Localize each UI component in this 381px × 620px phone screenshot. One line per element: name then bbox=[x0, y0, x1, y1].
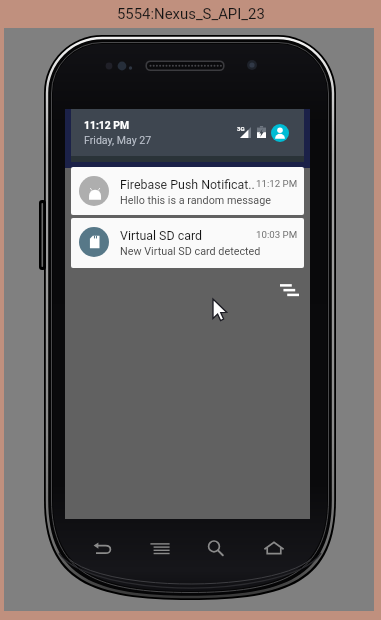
staticText: 11:12 PM bbox=[84, 119, 130, 131]
staticText: Virtual SD card bbox=[120, 228, 265, 243]
button[interactable]: Home bbox=[258, 532, 290, 564]
button[interactable]: Virtual SD card bbox=[71, 218, 304, 268]
staticText: New Virtual SD card detected bbox=[120, 245, 261, 258]
staticText: Firebase Push Notificat.. bbox=[120, 177, 265, 192]
button[interactable]: Firebase Push Notificat.. bbox=[71, 167, 304, 215]
staticText: Hello this is a random message bbox=[120, 194, 271, 207]
button[interactable]: Clear all notifications bbox=[277, 278, 301, 302]
staticText: 3G bbox=[237, 125, 245, 132]
button[interactable]: Menu bbox=[144, 532, 176, 564]
staticText: 10:03 PM bbox=[256, 229, 298, 240]
staticText: 5554:Nexus_S_API_23 bbox=[117, 5, 265, 22]
button[interactable]: Back bbox=[86, 532, 118, 564]
staticText: Friday, May 27 bbox=[84, 134, 152, 146]
staticText: 11:12 PM bbox=[256, 178, 298, 189]
button[interactable]: Search bbox=[200, 532, 232, 564]
